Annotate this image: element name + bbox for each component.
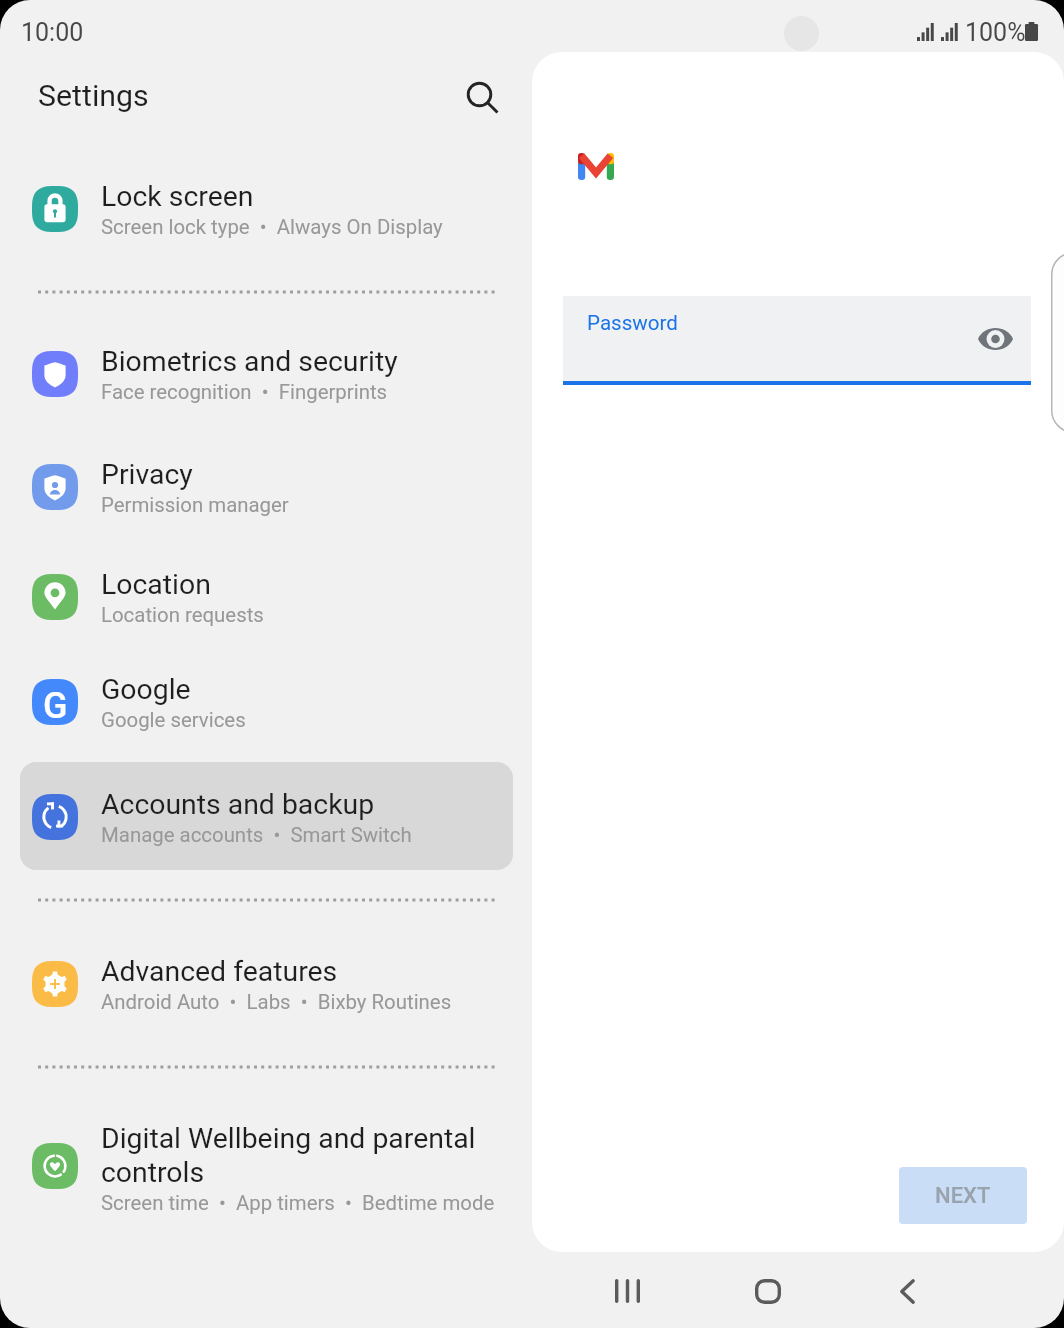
button[interactable]: Show password	[969, 313, 1021, 365]
staticText: G	[43, 685, 68, 727]
button[interactable]: Lock screen	[20, 161, 513, 233]
staticText: Android Auto • Labs • Bixby Routines	[101, 990, 452, 1014]
staticText: 10:00	[21, 18, 84, 47]
staticText: Google services	[101, 708, 246, 732]
staticText: Location	[101, 568, 211, 601]
staticText: Settings	[38, 78, 149, 114]
button[interactable]: Search	[455, 70, 511, 126]
button[interactable]: Home	[736, 1259, 800, 1323]
button[interactable]: Password	[563, 296, 1031, 385]
button[interactable]: Advanced features	[20, 936, 513, 1008]
button[interactable]: NEXT	[899, 1167, 1027, 1224]
button[interactable]: Accounts and backup	[20, 769, 513, 841]
staticText: Accounts and backup	[101, 788, 375, 821]
staticText: Face recognition • Fingerprints	[101, 380, 388, 404]
button[interactable]: Google	[20, 654, 513, 726]
staticText: Screen time • App timers • Bedtime mode	[101, 1191, 495, 1215]
staticText: Privacy	[101, 458, 193, 491]
staticText: Advanced features	[101, 955, 338, 988]
staticText: NEXT	[935, 1183, 991, 1209]
staticText: Google	[101, 673, 191, 706]
staticText: Permission manager	[101, 493, 289, 517]
button[interactable]: Biometrics and security	[20, 326, 513, 398]
button[interactable]: Privacy	[20, 439, 513, 511]
button[interactable]: Digital Wellbeing and parental controls	[20, 1103, 513, 1211]
staticText: Manage accounts • Smart Switch	[101, 823, 412, 847]
staticText: Location requests	[101, 603, 264, 627]
staticText: 100%	[965, 18, 1026, 47]
button[interactable]: Recents	[595, 1259, 659, 1323]
staticText: Password	[587, 311, 678, 335]
staticText: Biometrics and security	[101, 345, 398, 378]
staticText: Screen lock type • Always On Display	[101, 215, 443, 239]
button[interactable]: Location	[20, 549, 513, 621]
staticText: Digital Wellbeing and parental controls	[101, 1122, 476, 1189]
button[interactable]: Back	[875, 1259, 939, 1323]
staticText: Lock screen	[101, 180, 254, 213]
